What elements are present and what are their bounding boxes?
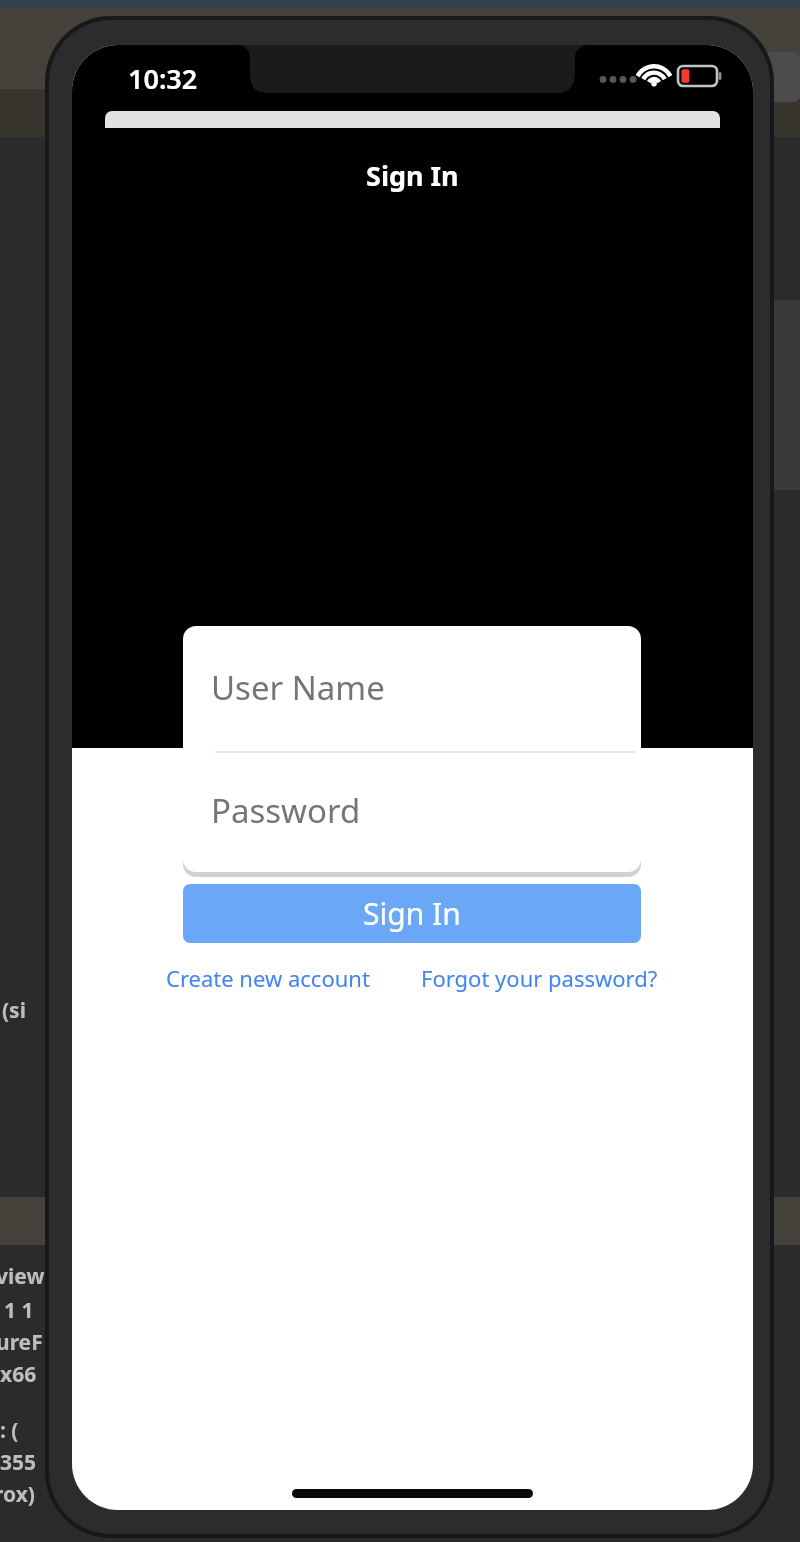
staticText: Sign In xyxy=(363,893,461,934)
staticText: (si xyxy=(2,996,26,1025)
button[interactable]: Forgot your password? xyxy=(419,961,660,995)
staticText: : ( xyxy=(0,1416,19,1445)
button[interactable]: Create new account xyxy=(164,961,372,995)
staticText: 1 1 xyxy=(4,1296,34,1325)
staticText: x66 xyxy=(0,1360,37,1389)
staticText: Sign In xyxy=(366,157,459,194)
button[interactable]: Password xyxy=(183,749,641,872)
staticText: rox) xyxy=(0,1480,35,1509)
staticText: Forgot your password? xyxy=(421,963,658,993)
staticText: User Name xyxy=(211,665,385,710)
staticText: view xyxy=(0,1262,45,1291)
staticText: 10:32 xyxy=(128,60,198,97)
staticText: 355 xyxy=(0,1448,37,1477)
button[interactable]: User Name xyxy=(183,626,641,749)
button[interactable]: Sign In xyxy=(183,884,641,943)
staticText: ureF xyxy=(0,1328,43,1357)
staticText: Password xyxy=(211,788,361,833)
staticText: Create new account xyxy=(166,963,370,993)
